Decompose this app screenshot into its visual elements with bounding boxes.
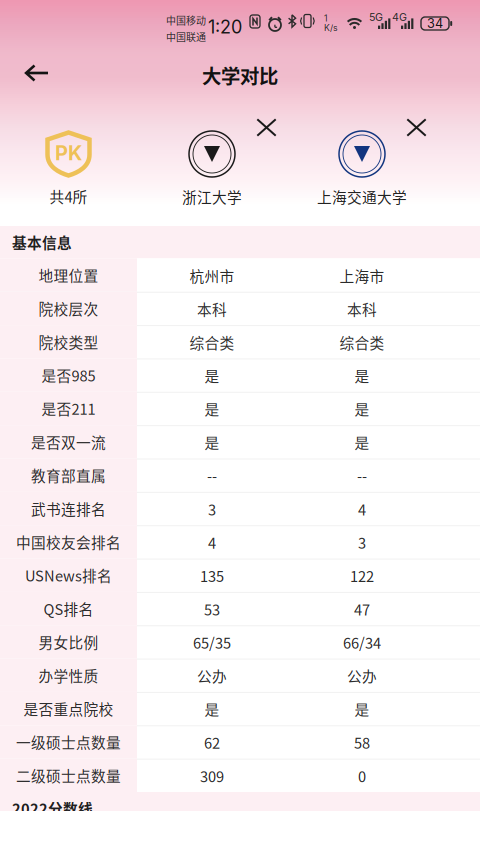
staticText: 共4所 xyxy=(49,185,87,207)
staticText: K/s xyxy=(324,22,338,33)
staticText: 本科 xyxy=(197,298,227,319)
staticText: 4 xyxy=(358,498,366,520)
staticText: USNews排名 xyxy=(25,565,112,586)
staticText: 公办 xyxy=(347,665,377,686)
staticText: 2022分数线 xyxy=(12,798,93,819)
staticText: 是 xyxy=(354,432,369,453)
staticText: 综合类 xyxy=(339,332,384,353)
staticText: 是否双一流 xyxy=(31,431,106,452)
staticText: 杭州市 xyxy=(189,265,234,286)
staticText: 浙江大学 xyxy=(182,186,242,207)
staticText: 是否985 xyxy=(41,364,95,386)
staticText: 男女比例 xyxy=(38,631,98,652)
staticText: QS排名 xyxy=(43,598,93,619)
staticText: 4G xyxy=(392,11,407,23)
staticText: 122 xyxy=(350,565,374,586)
staticText: 4 xyxy=(208,532,216,553)
staticText: 基本信息 xyxy=(12,232,72,253)
staticText: 是 xyxy=(354,365,369,386)
staticText: 66/34 xyxy=(343,632,381,653)
staticText: PK xyxy=(55,141,82,165)
staticText: 47 xyxy=(354,598,370,620)
staticText: 公办 xyxy=(197,665,227,686)
staticText: 是 xyxy=(354,398,369,420)
staticText: -- xyxy=(207,465,217,486)
staticText: 是否重点院校 xyxy=(23,698,113,719)
staticText: 上海交通大学 xyxy=(317,186,407,207)
staticText: 是否211 xyxy=(41,398,95,419)
staticText: 是 xyxy=(204,698,219,720)
staticText: 上海市 xyxy=(339,265,384,286)
staticText: 135 xyxy=(200,565,224,586)
staticText: 53 xyxy=(204,598,220,620)
staticText: 62 xyxy=(204,732,220,753)
staticText: 65/35 xyxy=(193,632,231,653)
staticText: 二级硕士点数量 xyxy=(16,765,121,786)
staticText: 1 xyxy=(324,13,328,23)
staticText: 是 xyxy=(354,698,369,720)
staticText: 58 xyxy=(354,732,370,753)
button[interactable]: 移除浙江大学 xyxy=(249,111,284,144)
button[interactable]: 移除上海交通大学 xyxy=(399,111,434,144)
staticText: 34 xyxy=(427,16,443,31)
staticText: 综合类 xyxy=(189,332,234,353)
staticText: 大学对比 xyxy=(202,61,278,89)
staticText: 是 xyxy=(204,432,219,453)
staticText: 武书连排名 xyxy=(31,498,106,519)
staticText: 是 xyxy=(204,398,219,420)
staticText: 是 xyxy=(204,365,219,386)
staticText: 1:20 xyxy=(208,16,242,38)
staticText: 309 xyxy=(200,765,224,786)
staticText: 院校层次 xyxy=(38,298,98,319)
staticText: 中国联通 xyxy=(166,29,206,44)
staticText: 3 xyxy=(208,498,216,520)
staticText: 3 xyxy=(358,532,366,553)
staticText: 中国校友会排名 xyxy=(16,531,121,552)
staticText: 地理位置 xyxy=(38,264,98,286)
button[interactable]: 返回 xyxy=(14,51,60,95)
staticText: 一级硕士点数量 xyxy=(16,731,121,753)
staticText: 中国移动 xyxy=(166,13,206,27)
staticText: 办学性质 xyxy=(38,665,98,686)
staticText: 5G xyxy=(369,11,383,23)
staticText: -- xyxy=(357,465,367,486)
staticText: 本科 xyxy=(347,298,377,319)
staticText: 院校类型 xyxy=(38,331,98,352)
staticText: 0 xyxy=(358,765,366,786)
staticText: 教育部直属 xyxy=(31,465,106,486)
